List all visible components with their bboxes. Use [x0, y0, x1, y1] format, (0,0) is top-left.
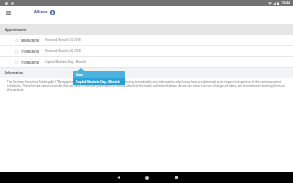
button[interactable]: Save — [73, 71, 125, 85]
staticText: 11/08/2018 — [21, 49, 39, 53]
button[interactable]: 08/05/2018 — [0, 35, 293, 46]
staticText: Appointments — [5, 28, 27, 32]
staticText: 12:44 — [282, 1, 291, 5]
button[interactable]: Open navigation menu — [3, 8, 13, 18]
staticText: Information — [5, 71, 24, 75]
staticText: Capital Markets Day - Munich — [45, 60, 87, 64]
staticText: Financial Results 1Q 2018 — [45, 38, 81, 42]
staticText: Financial Results 2Q 2018 — [45, 49, 81, 53]
button[interactable]: Back — [111, 172, 125, 183]
staticText: 11/08/2018 — [21, 60, 39, 64]
button[interactable]: 11/08/2018 — [0, 46, 293, 57]
staticText: 08/05/2018 — [21, 38, 39, 42]
staticText: Save — [76, 73, 83, 77]
button[interactable]: Home — [140, 172, 154, 183]
staticText: The German Securities Trading Act ("Wert… — [7, 80, 286, 92]
staticText: Capital Markets Day - Munich — [76, 80, 120, 84]
button[interactable]: 11/08/2018 — [0, 57, 293, 68]
staticText: Allianz — [34, 9, 48, 15]
button[interactable]: Recent apps — [169, 172, 183, 183]
